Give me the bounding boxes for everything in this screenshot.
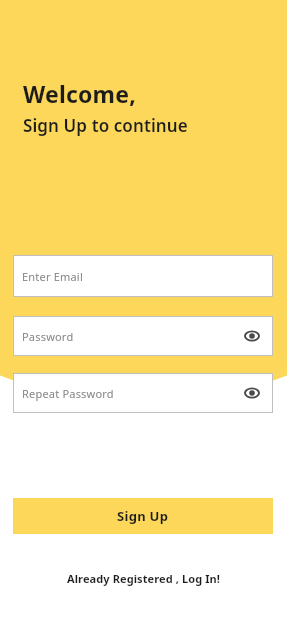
staticText: Enter Email bbox=[22, 269, 83, 284]
button[interactable]: Sign Up bbox=[13, 498, 273, 534]
staticText: Sign Up to continue bbox=[23, 114, 188, 137]
button[interactable]: Password bbox=[13, 316, 273, 356]
button[interactable]: Already Registered , Log In! bbox=[0, 569, 287, 587]
button[interactable]: Repeat Password bbox=[13, 373, 273, 413]
staticText: Repeat Password bbox=[22, 386, 114, 401]
button[interactable]: Enter Email bbox=[13, 255, 273, 297]
staticText: Sign Up bbox=[117, 507, 169, 525]
staticText: Welcome, bbox=[23, 78, 136, 109]
button[interactable]: Show password bbox=[242, 326, 262, 346]
staticText: Password bbox=[22, 329, 74, 344]
button[interactable]: Show password bbox=[242, 383, 262, 403]
staticText: Already Registered , Log In! bbox=[67, 571, 220, 586]
